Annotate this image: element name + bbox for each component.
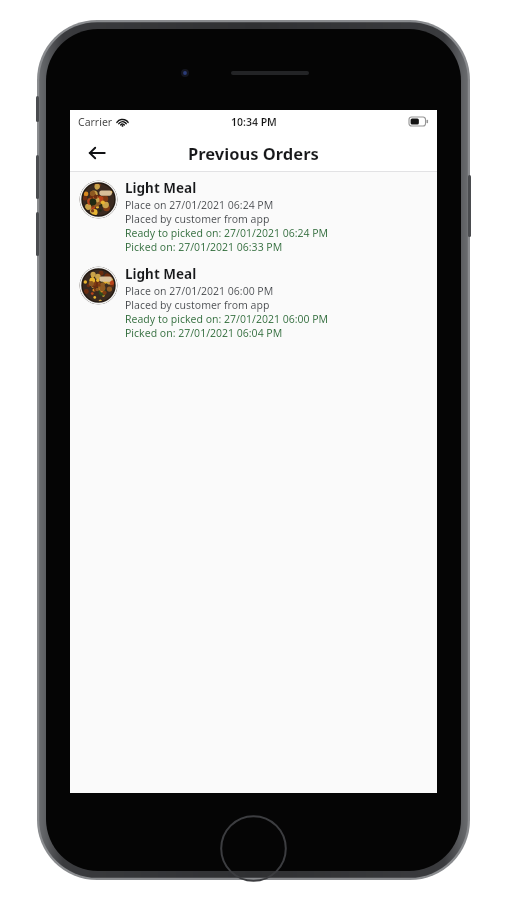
staticText: Picked on: 27/01/2021 06:33 PM: [125, 240, 283, 254]
staticText: Place on 27/01/2021 06:00 PM: [125, 284, 274, 298]
staticText: Ready to picked on: 27/01/2021 06:00 PM: [125, 312, 329, 326]
staticText: 10:34 PM: [231, 115, 277, 129]
button[interactable]: Back: [80, 136, 114, 170]
staticText: Previous Orders: [188, 142, 319, 164]
staticText: Carrier: [78, 115, 113, 129]
staticText: Ready to picked on: 27/01/2021 06:24 PM: [125, 226, 329, 240]
staticText: Light Meal: [125, 179, 197, 197]
staticText: Place on 27/01/2021 06:24 PM: [125, 198, 274, 212]
staticText: Placed by customer from app: [125, 298, 270, 312]
staticText: Placed by customer from app: [125, 212, 270, 226]
staticText: Light Meal: [125, 265, 197, 283]
button[interactable]: Light Meal: [70, 258, 437, 344]
button[interactable]: Light Meal: [70, 172, 437, 258]
staticText: Picked on: 27/01/2021 06:04 PM: [125, 326, 283, 340]
